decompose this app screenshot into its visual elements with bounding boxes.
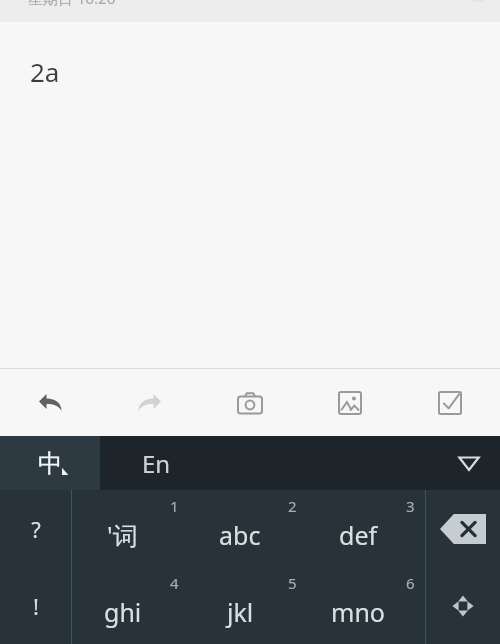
button[interactable]: 2 [189, 490, 307, 567]
button[interactable]: Redo [100, 369, 200, 436]
button[interactable]: 1 [72, 490, 189, 567]
staticText: def [339, 518, 378, 552]
staticText: 3 [406, 496, 415, 516]
staticText: 1 [170, 496, 179, 516]
button[interactable]: Undo [0, 369, 100, 436]
button[interactable]: Backspace [426, 490, 500, 567]
button[interactable]: ? [0, 490, 71, 567]
staticText: ? [31, 514, 41, 544]
staticText: abc [219, 518, 261, 552]
button[interactable]: En [100, 436, 500, 490]
button[interactable]: Checklist [400, 369, 500, 436]
button[interactable]: Switch input language [0, 436, 100, 490]
staticText: 6 [406, 573, 415, 593]
button[interactable]: Insert image [300, 369, 400, 436]
staticText: mno [331, 595, 385, 629]
button[interactable]: 5 [189, 567, 307, 644]
button[interactable]: ! [0, 567, 71, 644]
button[interactable]: 4 [72, 567, 189, 644]
button[interactable]: Camera [200, 369, 300, 436]
button[interactable]: 6 [307, 567, 425, 644]
button[interactable]: 3 [307, 490, 425, 567]
staticText: 2a [30, 54, 60, 89]
button[interactable]: Expand candidates [452, 446, 486, 480]
staticText: ghi [104, 595, 142, 629]
staticText: jkl [227, 595, 254, 629]
staticText: 5 [288, 573, 297, 593]
staticText: ! [33, 591, 39, 621]
staticText: ▬ [472, 0, 486, 6]
staticText: '词 [107, 518, 138, 552]
staticText: En [142, 447, 171, 480]
staticText: 4 [170, 573, 179, 593]
button[interactable]: Move cursor [426, 567, 500, 644]
staticText: 中 [38, 448, 63, 479]
staticText: 2 [288, 496, 297, 516]
staticText: 星期日 10:26 [28, 0, 116, 8]
